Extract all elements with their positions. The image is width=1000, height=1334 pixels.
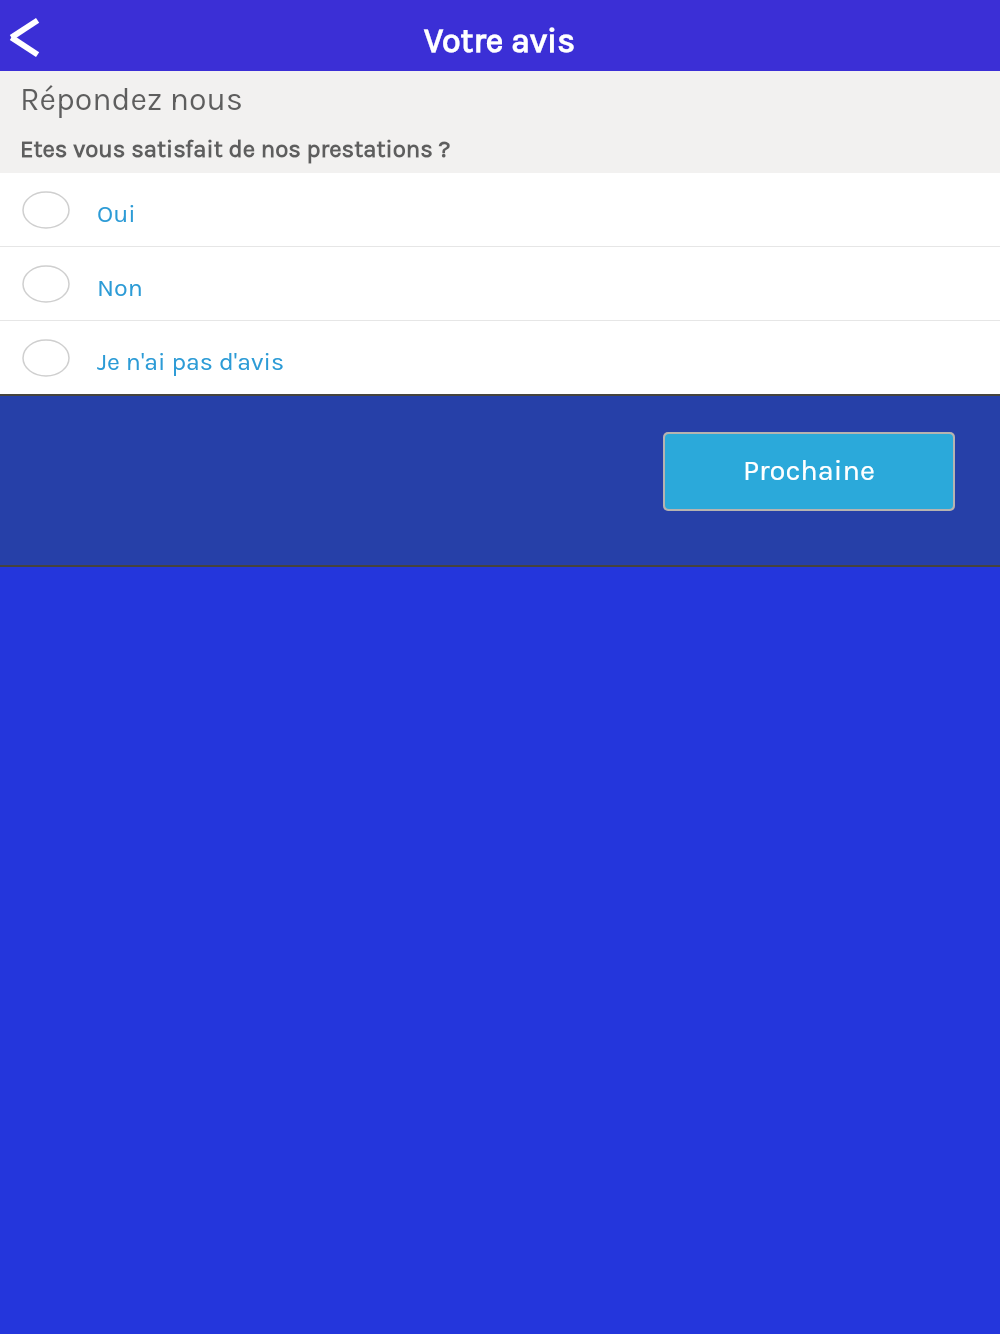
button[interactable]: Je n'ai pas d'avis <box>0 321 1000 394</box>
button[interactable]: Prochaine <box>665 434 953 509</box>
button[interactable]: Back <box>0 0 56 71</box>
staticText: Non <box>97 273 143 302</box>
staticText: Votre avis <box>424 21 576 61</box>
staticText: Prochaine <box>743 453 875 487</box>
staticText: Oui <box>97 199 136 228</box>
staticText: Etes vous satisfait de nos prestations ? <box>20 135 451 163</box>
staticText: Je n'ai pas d'avis <box>97 347 285 376</box>
button[interactable]: Oui <box>0 173 1000 246</box>
button[interactable]: Non <box>0 247 1000 320</box>
staticText: Répondez nous <box>20 81 243 118</box>
